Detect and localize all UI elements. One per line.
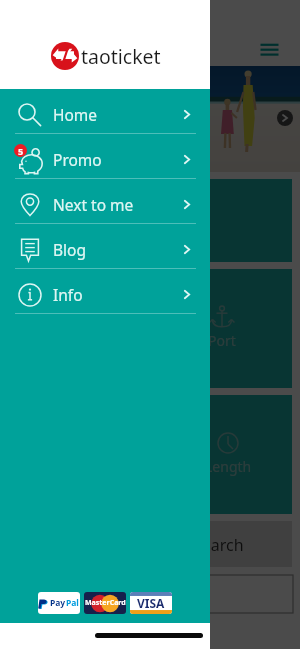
staticText: Home [53,104,98,125]
staticText: Pay [50,597,66,609]
button[interactable]: Blog [0,224,210,269]
button[interactable]: Search [0,521,292,567]
button[interactable]: Info [0,269,210,314]
staticText: MasterCard [85,598,126,608]
button[interactable]: Open navigation menu [250,41,288,63]
staticText: Next to me [53,194,134,215]
staticText: Port [208,331,236,350]
staticText: Pal [66,597,79,609]
button[interactable]: Next image [277,110,293,126]
staticText: Blog [53,239,86,260]
staticText: Promo [53,149,102,170]
staticText: taoticket [81,43,161,70]
button[interactable]: Next to me [0,179,210,224]
staticText: Search [193,534,244,556]
staticText: 5 [18,145,24,157]
button[interactable]: 5 [0,134,210,179]
staticText: VISA [137,595,165,611]
staticText: Length [205,457,252,476]
button[interactable]: Home [0,89,210,134]
staticText: Info [53,284,83,305]
